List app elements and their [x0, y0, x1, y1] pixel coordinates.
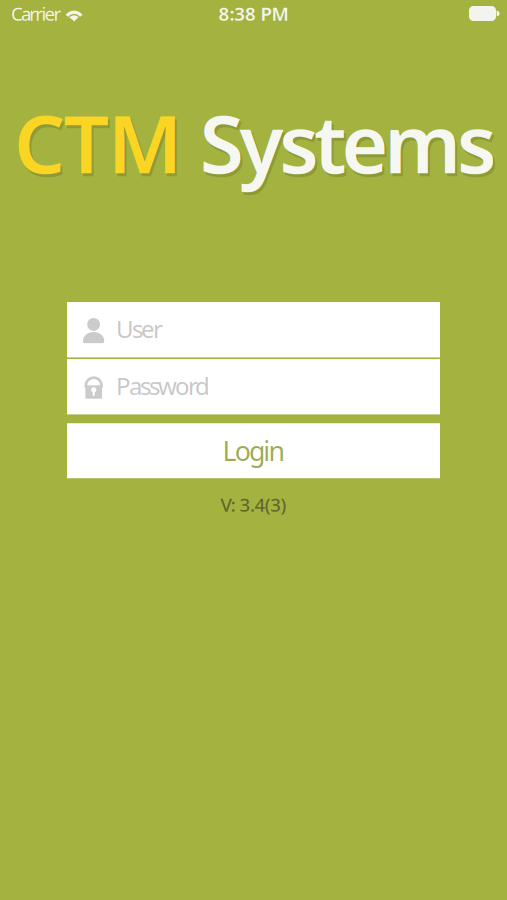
- staticText: Carrier: [11, 1, 62, 26]
- staticText: Systems: [200, 89, 496, 195]
- button[interactable]: User: [67, 302, 440, 357]
- button[interactable]: Password: [67, 359, 440, 414]
- staticText: Systems: [202, 92, 498, 198]
- staticText: Password: [116, 370, 210, 402]
- staticText: 8:38 PM: [219, 1, 288, 26]
- button[interactable]: Login: [67, 423, 440, 478]
- staticText: CTM: [14, 89, 182, 195]
- staticText: Login: [223, 433, 284, 468]
- staticText: User: [116, 313, 163, 345]
- staticText: V: 3.4(3): [220, 492, 287, 517]
- staticText: CTM: [16, 92, 184, 198]
